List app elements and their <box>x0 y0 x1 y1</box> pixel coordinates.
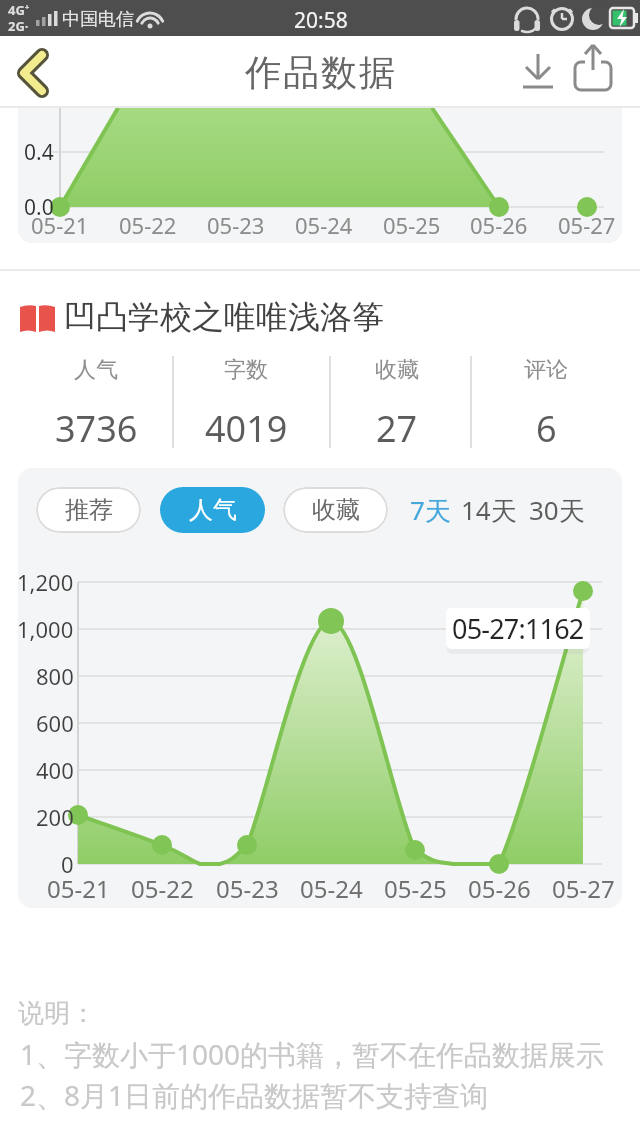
staticText: 2、8月1日前的作品数据暂不支持查询 <box>20 1076 489 1114</box>
staticText: 800 <box>36 661 74 691</box>
button[interactable]: 7天 <box>402 487 458 533</box>
staticText: 27 <box>376 404 418 453</box>
staticText: 05-21 <box>31 210 89 240</box>
staticText: 1、字数小于1000的书籍，暂不在作品数据展示 <box>20 1035 605 1073</box>
staticText: 说明： <box>18 997 96 1030</box>
staticText: 4019 <box>205 404 288 453</box>
staticText: 05-22 <box>119 210 177 240</box>
staticText: 字数 <box>224 356 268 384</box>
staticText: 200 <box>36 802 74 832</box>
staticText: 推荐 <box>65 495 113 525</box>
staticText: 收藏 <box>375 356 419 384</box>
staticText: 1,200 <box>18 567 74 597</box>
staticText: 7天 <box>410 492 451 528</box>
staticText: 2G· <box>8 17 29 35</box>
staticText: 0 <box>61 849 74 879</box>
staticText: 14天 <box>461 492 517 528</box>
staticText: 3736 <box>55 404 138 453</box>
button[interactable]: 人气 <box>160 487 265 533</box>
staticText: 人气 <box>189 495 237 525</box>
button[interactable]: 收藏 <box>283 487 388 533</box>
staticText: 评论 <box>524 356 568 384</box>
staticText: 30天 <box>529 492 585 528</box>
button[interactable]: 14天 <box>458 487 520 533</box>
staticText: 05-27 <box>558 210 616 240</box>
staticText: 20:58 <box>294 6 348 35</box>
staticText: 6 <box>536 404 557 453</box>
button[interactable]: 凹凸学校之唯唯浅洛筝 <box>0 290 640 346</box>
staticText: 05-22 <box>131 872 194 905</box>
button[interactable] <box>566 40 622 102</box>
staticText: 05-26 <box>468 872 531 905</box>
staticText: 05-24 <box>295 210 353 240</box>
button[interactable]: 推荐 <box>36 487 141 533</box>
staticText: 05-25 <box>383 210 441 240</box>
staticText: 05-23 <box>207 210 265 240</box>
staticText: 0.4 <box>24 138 54 167</box>
button[interactable]: 30天 <box>526 487 588 533</box>
staticText: 05-27:1162 <box>452 610 584 647</box>
staticText: 05-21 <box>47 872 110 905</box>
staticText: 4G⁺ <box>8 1 30 19</box>
staticText: 中国电信 <box>62 8 134 31</box>
staticText: 1,000 <box>18 614 74 644</box>
staticText: 05-27 <box>552 872 615 905</box>
button[interactable] <box>0 36 70 108</box>
staticText: 05-26 <box>470 210 528 240</box>
button[interactable] <box>510 44 566 102</box>
staticText: 凹凸学校之唯唯浅洛筝 <box>64 297 384 337</box>
staticText: 05-25 <box>384 872 447 905</box>
staticText: 05-23 <box>216 872 279 905</box>
staticText: 收藏 <box>312 495 360 525</box>
staticText: 人气 <box>74 356 118 384</box>
staticText: 0.0 <box>24 193 54 222</box>
staticText: 400 <box>36 755 74 785</box>
staticText: 600 <box>36 708 74 738</box>
staticText: 作品数据 <box>244 50 396 95</box>
staticText: 05-24 <box>300 872 363 905</box>
